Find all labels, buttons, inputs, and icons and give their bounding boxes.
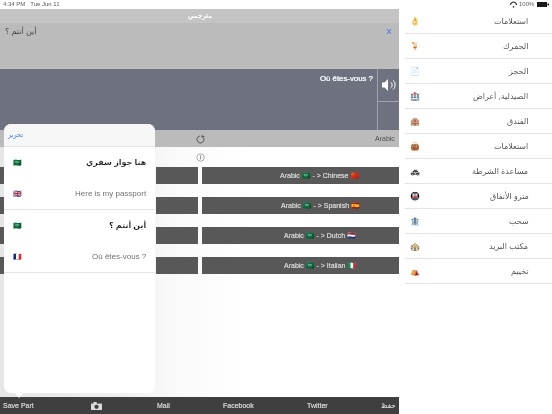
button[interactable]: 🇬🇧: [4, 178, 155, 209]
staticText: Arabic 🇸🇦 - > Spanish 🇪🇸: [281, 202, 360, 210]
staticText: أين أنتم ؟: [109, 221, 147, 230]
staticText: 🍹: [410, 42, 420, 51]
staticText: Où êtes-vous ?: [92, 252, 147, 261]
staticText: استعلامات: [494, 17, 529, 26]
staticText: أين أنتم ؟: [5, 27, 37, 36]
button[interactable]: 🏨: [399, 109, 552, 133]
button[interactable]: Camera: [88, 398, 104, 414]
button[interactable]: Mail: [157, 402, 170, 410]
staticText: استعلامات: [494, 142, 529, 151]
button[interactable]: 🇸🇦: [4, 147, 155, 178]
button[interactable]: Info: [194, 151, 206, 163]
button[interactable]: تحرير: [8, 131, 23, 139]
button[interactable]: [54, 197, 151, 214]
staticText: الجمرك: [503, 42, 529, 51]
button[interactable]: 🏦: [399, 209, 552, 233]
staticText: 🇸🇦: [13, 222, 22, 230]
button[interactable]: 🇫🇷: [4, 241, 155, 272]
staticText: 🏤: [410, 242, 420, 251]
button[interactable]: 🚇: [399, 184, 552, 208]
button[interactable]: Twitter: [307, 402, 328, 410]
staticText: الفندق: [507, 117, 529, 126]
staticText: مكتب البريد: [489, 242, 529, 251]
staticText: ⛺: [410, 267, 420, 276]
staticText: 🚓: [410, 167, 420, 176]
staticText: مترجمي: [188, 12, 212, 20]
button[interactable]: [54, 227, 151, 244]
button[interactable]: ⛺: [399, 259, 552, 283]
button[interactable]: Arabic 🇸🇦 - > Dutch 🇳🇱: [202, 227, 399, 244]
button[interactable]: حفظ: [381, 402, 396, 410]
staticText: Arabic 🇸🇦 - > Italian 🇮🇹: [284, 262, 357, 270]
staticText: Here is my passport: [75, 189, 147, 198]
staticText: Arabic: [375, 135, 395, 143]
button[interactable]: 📄: [399, 59, 552, 83]
staticText: 👜: [410, 142, 420, 151]
button[interactable]: 👌: [399, 9, 552, 33]
button[interactable]: Arabic 🇸🇦 - > Spanish 🇪🇸: [202, 197, 399, 214]
staticText: حفظ: [381, 402, 396, 410]
staticText: 🚇: [410, 192, 420, 201]
staticText: Arabic 🇸🇦 - > Dutch 🇳🇱: [284, 232, 356, 240]
button[interactable]: Save Part: [3, 402, 34, 410]
staticText: Mail: [157, 402, 170, 410]
button[interactable]: [0, 227, 49, 244]
button[interactable]: 🍹: [399, 34, 552, 58]
button[interactable]: Arabic 🇸🇦 - > Italian 🇮🇹: [202, 257, 399, 274]
button[interactable]: 🇸🇦: [4, 210, 155, 241]
staticText: تحرير: [8, 131, 23, 139]
button[interactable]: [0, 167, 49, 184]
staticText: Où êtes-vous ?: [320, 74, 373, 83]
staticText: 👌: [410, 17, 420, 26]
button[interactable]: [0, 197, 49, 214]
staticText: 🇬🇧: [13, 190, 22, 198]
button[interactable]: [0, 257, 49, 274]
button[interactable]: Refresh: [192, 131, 208, 147]
staticText: Save Part: [3, 402, 34, 410]
staticText: Twitter: [307, 402, 328, 410]
staticText: الحجز: [509, 67, 529, 76]
staticText: سحب: [509, 217, 529, 226]
staticText: 🏦: [410, 217, 420, 226]
staticText: 🇫🇷: [13, 253, 22, 261]
staticText: Arabic 🇸🇦 - > Chinese 🇨🇳: [280, 172, 360, 180]
staticText: 100%: [519, 1, 535, 8]
button[interactable]: 👜: [399, 134, 552, 158]
staticText: الصيدلية, أعراض: [473, 92, 529, 101]
button[interactable]: Facebook: [223, 402, 254, 410]
staticText: 🏨: [410, 117, 420, 126]
staticText: 4:34 PM Tue Jun 11: [3, 1, 60, 8]
button[interactable]: Clear text: [383, 25, 395, 37]
staticText: Facebook: [223, 402, 254, 410]
staticText: مساعدة الشرطة: [472, 167, 529, 176]
button[interactable]: Speak translation: [378, 69, 399, 101]
button[interactable]: 🏤: [399, 234, 552, 258]
button[interactable]: Arabic 🇸🇦 - > Chinese 🇨🇳: [202, 167, 399, 184]
staticText: مترو الأنفاق: [490, 192, 529, 201]
staticText: تخييم: [511, 267, 529, 276]
staticText: هنا جواز سفري: [86, 158, 147, 167]
button[interactable]: [54, 257, 151, 274]
staticText: 🇸🇦: [13, 159, 22, 167]
button[interactable]: 🏥: [399, 84, 552, 108]
button[interactable]: 🚓: [399, 159, 552, 183]
staticText: 🏥: [410, 92, 420, 101]
staticText: 📄: [410, 67, 420, 76]
